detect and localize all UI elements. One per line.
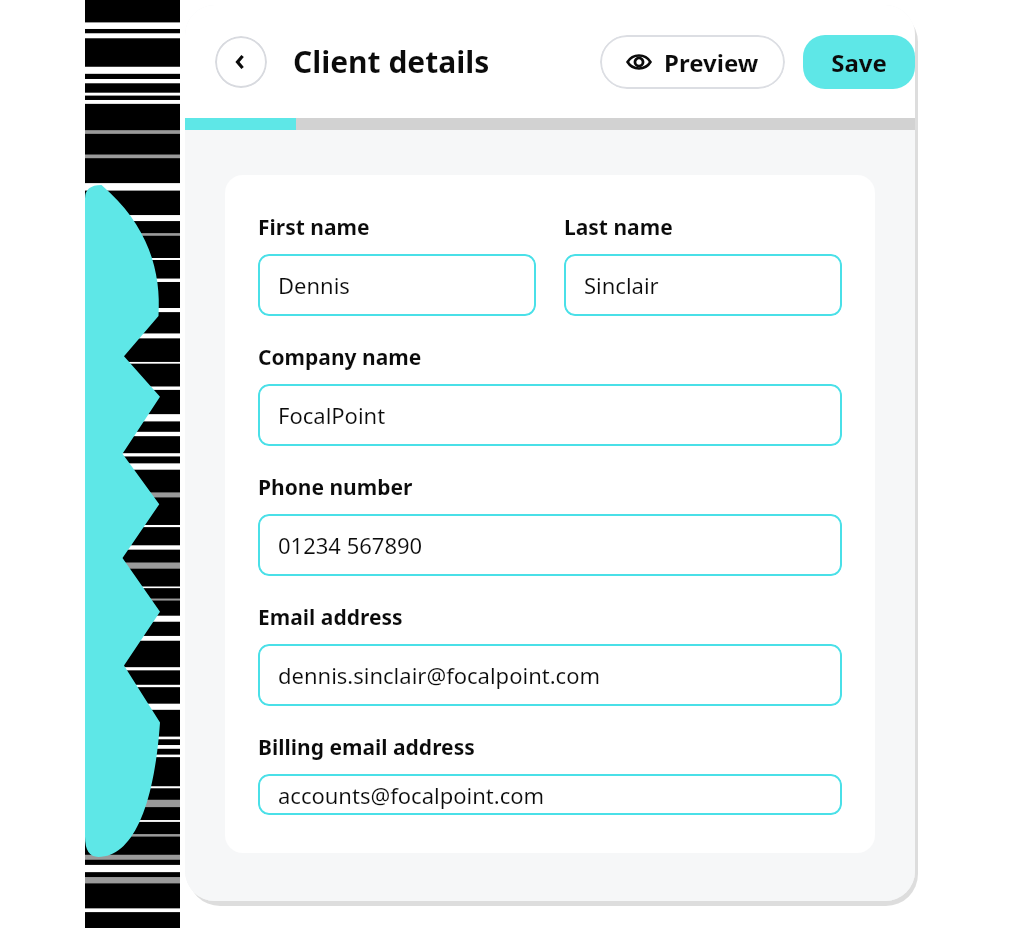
staticText: First name (258, 213, 370, 242)
button[interactable]: Back (215, 36, 267, 88)
staticText: Save (831, 46, 887, 79)
button[interactable]: Dennis (258, 254, 536, 316)
staticText: Last name (564, 213, 673, 242)
staticText: 01234 567890 (278, 530, 423, 560)
button[interactable]: dennis.sinclair@focalpoint.com (258, 644, 842, 706)
staticText: Dennis (278, 270, 350, 300)
button[interactable]: Preview (600, 35, 785, 89)
staticText: FocalPoint (278, 400, 386, 430)
button[interactable]: 01234 567890 (258, 514, 842, 576)
button[interactable]: Save (803, 35, 915, 89)
staticText: Sinclair (584, 270, 659, 300)
staticText: accounts@focalpoint.com (278, 780, 545, 810)
staticText: Email address (258, 603, 403, 632)
staticText: dennis.sinclair@focalpoint.com (278, 660, 601, 690)
button[interactable]: Sinclair (564, 254, 842, 316)
button[interactable]: accounts@focalpoint.com (258, 774, 842, 815)
staticText: Client details (293, 41, 490, 82)
staticText: Preview (664, 46, 759, 79)
staticText: Billing email address (258, 733, 475, 762)
staticText: Phone number (258, 473, 413, 502)
button[interactable]: FocalPoint (258, 384, 842, 446)
staticText: Company name (258, 343, 422, 372)
